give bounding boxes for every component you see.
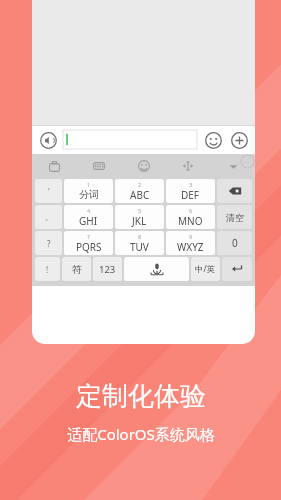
staticText: 适配ColorOS系统风格 [67,424,215,444]
button[interactable]: 8 [115,231,164,255]
staticText: 123 [99,263,116,276]
button[interactable]: 9 [166,231,215,255]
staticText: 清空 [226,212,244,223]
button[interactable] [124,257,189,281]
staticText: 定制化体验 [76,380,206,413]
staticText: WXYZ [177,240,204,254]
button[interactable]: ? [35,231,62,255]
staticText: 6 [189,207,193,214]
button[interactable]: 中/英 [191,257,220,281]
staticText: 符 [72,263,82,276]
staticText: 8 [138,233,142,240]
staticText: 7 [87,233,91,240]
button[interactable] [217,179,252,203]
button[interactable]: 2 [115,179,164,203]
staticText: 。 [45,212,53,222]
button[interactable]: 0 [217,231,252,255]
button[interactable]: 6 [166,205,215,229]
staticText: ? [47,238,51,249]
staticText: ABC [130,188,150,202]
button[interactable]: 1 [64,179,113,203]
staticText: ! [46,264,49,275]
staticText: PQRS [76,240,102,254]
button[interactable]: Voice input [38,130,58,150]
button[interactable]: 清空 [217,205,252,229]
button[interactable]: Add [229,130,249,150]
staticText: MNO [178,214,203,228]
button[interactable]: 4 [64,205,113,229]
button[interactable]: ! [35,257,60,281]
button[interactable]: ' [35,179,62,203]
staticText: 9 [189,233,193,240]
staticText: 5 [138,207,142,214]
button[interactable]: 3 [166,179,215,203]
staticText: TUV [130,240,149,254]
staticText: ' [48,186,50,197]
staticText: 4 [87,207,91,214]
button[interactable]: Clipboard [44,156,64,176]
button[interactable]: 7 [64,231,113,255]
staticText: JKL [132,214,147,228]
button[interactable] [222,257,252,281]
button[interactable]: Hide keyboard [223,156,243,176]
staticText: 1 [87,181,91,188]
staticText: 2 [138,181,142,188]
staticText: DEF [181,188,200,202]
button[interactable]: 5 [115,205,164,229]
button[interactable]: Emoji panel [134,156,154,176]
button[interactable]: 123 [93,257,122,281]
staticText: 中/英 [195,263,216,275]
staticText: GHI [79,214,98,228]
staticText: 3 [189,181,193,188]
button[interactable]: Move cursor [178,156,198,176]
button[interactable]: Keyboard layout [89,156,109,176]
button[interactable]: 符 [62,257,91,281]
button[interactable] [63,130,197,149]
staticText: 0 [232,236,238,250]
button[interactable]: 。 [35,205,62,229]
button[interactable]: Emoji [203,130,223,150]
staticText: 分词 [79,188,99,201]
